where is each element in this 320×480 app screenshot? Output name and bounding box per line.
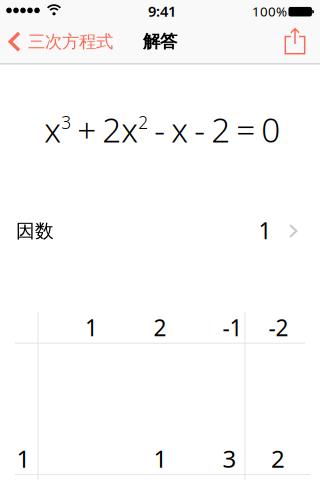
staticText: 100% [252,2,287,20]
staticText: 3 [222,443,236,474]
staticText: 因数 [16,219,54,242]
button[interactable]: 因数 [0,213,320,249]
staticText: 2 [153,312,166,342]
staticText: -2 [268,312,288,342]
staticText: x3 + 2x2 - x - 2 = 0 [44,107,280,152]
staticText: 9:41 [148,1,176,21]
staticText: -1 [222,312,242,342]
button[interactable]: 三次方程式 [8,31,113,52]
staticText: 解答 [143,31,177,52]
staticText: 1 [258,215,271,245]
button[interactable]: 共有 [284,27,305,54]
staticText: 1 [16,443,30,474]
staticText: 三次方程式 [28,31,113,52]
staticText: 2 [271,443,285,474]
staticText: 1 [153,443,167,474]
staticText: 1 [85,312,98,342]
